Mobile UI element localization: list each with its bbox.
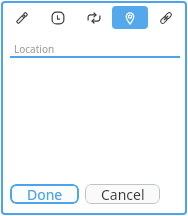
button[interactable]: Location xyxy=(112,6,148,29)
button[interactable]: Location xyxy=(10,36,180,58)
staticText: Done xyxy=(27,185,63,204)
button[interactable]: Cancel xyxy=(85,184,160,204)
button[interactable]: Done xyxy=(10,184,79,204)
button[interactable]: Edit xyxy=(4,6,40,29)
button[interactable]: Link xyxy=(148,6,184,29)
staticText: Cancel xyxy=(101,185,145,204)
staticText: Location xyxy=(14,42,55,56)
button[interactable]: Time xyxy=(40,6,76,29)
button[interactable]: Repeat xyxy=(76,6,112,29)
